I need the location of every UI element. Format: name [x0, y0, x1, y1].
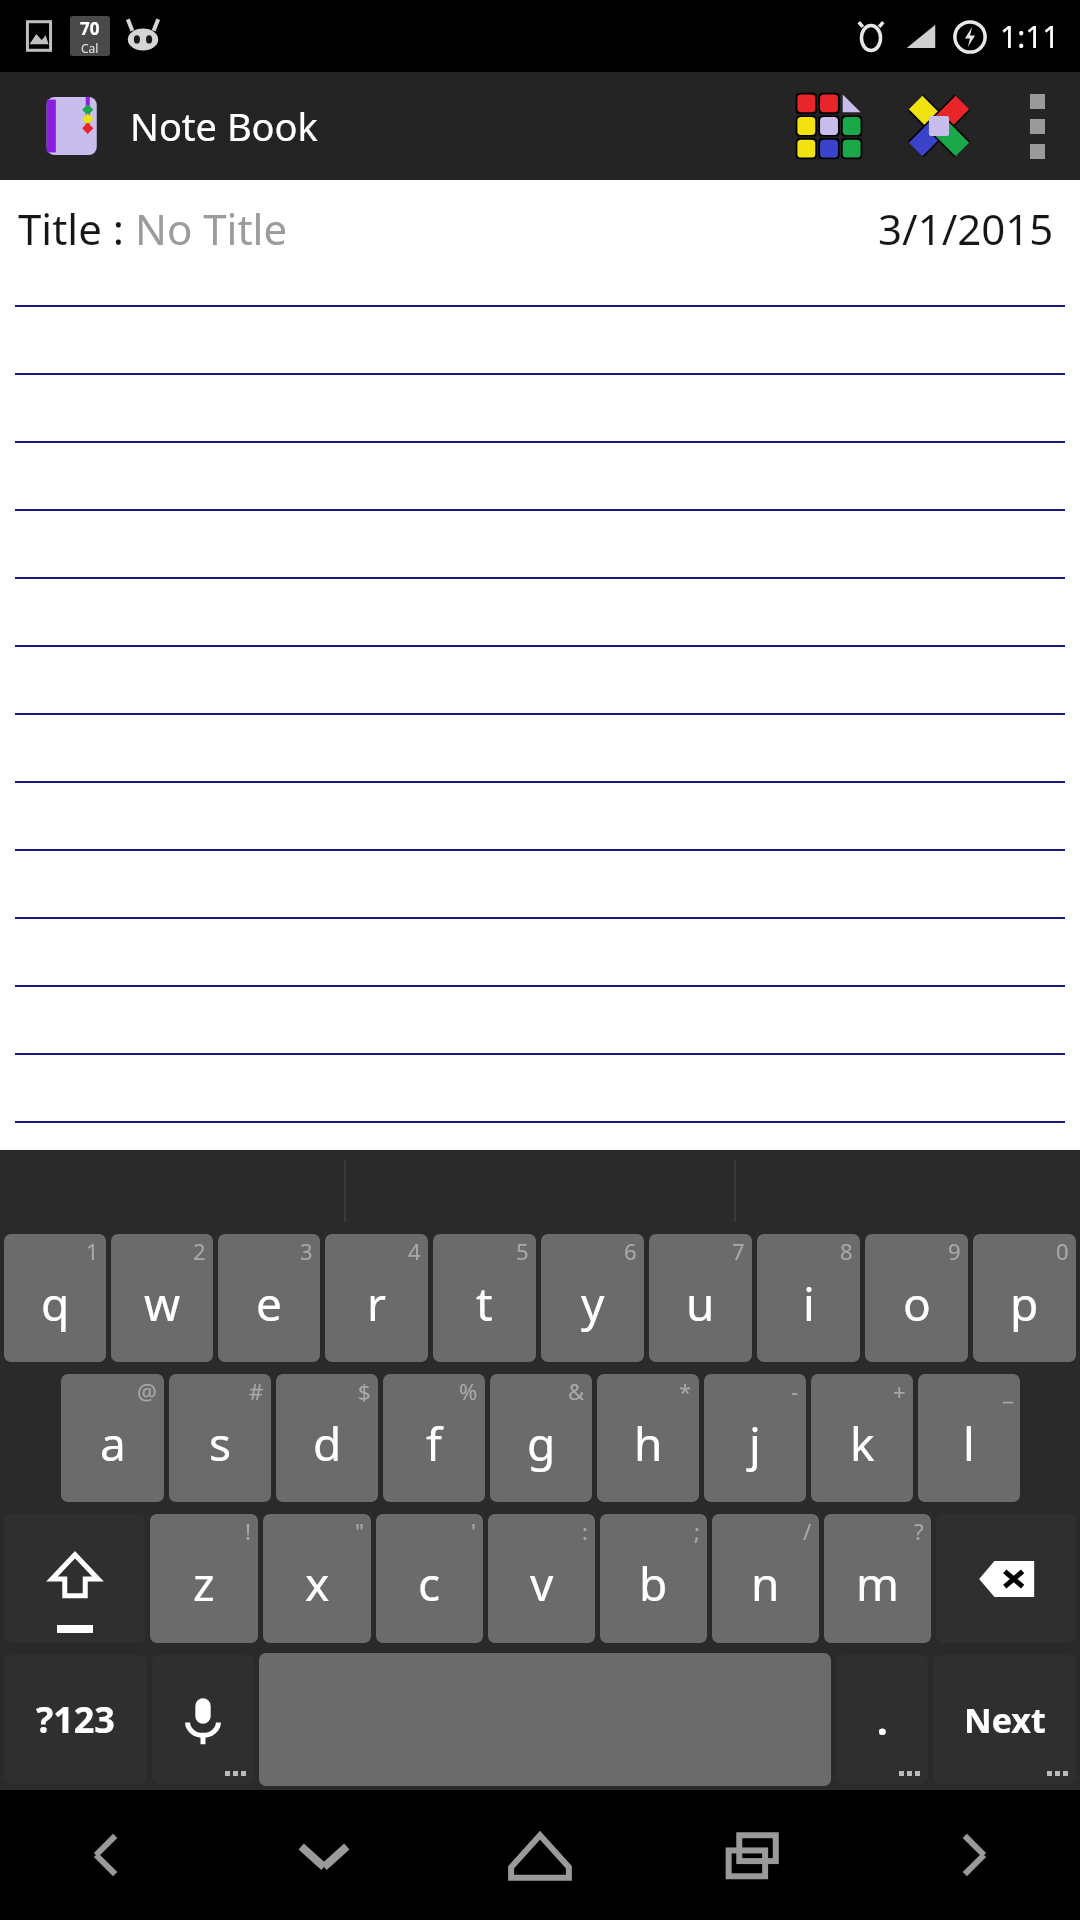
staticText: ?	[914, 1516, 924, 1546]
staticText: 5	[516, 1236, 529, 1266]
staticText: 3	[300, 1236, 313, 1266]
staticText: f	[426, 1412, 442, 1475]
staticText: y	[581, 1272, 605, 1335]
button[interactable]: /	[712, 1514, 819, 1643]
button[interactable]: 6	[541, 1234, 644, 1362]
staticText: 1:11	[1000, 16, 1060, 57]
staticText: z	[193, 1552, 215, 1615]
staticText: x	[305, 1552, 330, 1615]
staticText: +	[893, 1376, 906, 1406]
staticText: d	[313, 1412, 342, 1475]
staticText: 0	[1056, 1236, 1069, 1266]
staticText: a	[100, 1412, 126, 1475]
staticText: 8	[840, 1236, 853, 1266]
button[interactable]: Next	[933, 1655, 1076, 1784]
button[interactable]: 8	[757, 1234, 860, 1362]
staticText: /	[803, 1516, 812, 1546]
button[interactable]: %	[383, 1374, 485, 1502]
staticText: 9	[948, 1236, 961, 1266]
button[interactable]: &	[490, 1374, 592, 1502]
staticText: _	[1003, 1376, 1013, 1406]
staticText: q	[41, 1272, 70, 1335]
staticText: *	[679, 1376, 692, 1406]
staticText: 1	[86, 1236, 99, 1266]
button[interactable]: More options	[994, 72, 1080, 180]
staticText: Cal	[81, 40, 99, 56]
staticText: r	[367, 1272, 386, 1335]
staticText: Next	[964, 1697, 1046, 1743]
staticText: :	[582, 1516, 588, 1546]
button[interactable]: Home	[432, 1790, 648, 1920]
button[interactable]: 4	[325, 1234, 428, 1362]
button[interactable]: .	[836, 1655, 928, 1784]
button[interactable]: _	[918, 1374, 1020, 1502]
button[interactable]: Back	[0, 1790, 216, 1920]
staticText: 7	[732, 1236, 745, 1266]
button[interactable]: Delete	[936, 1514, 1076, 1643]
staticText: "	[355, 1516, 364, 1546]
button[interactable]: '	[376, 1514, 483, 1643]
button[interactable]: 9	[865, 1234, 968, 1362]
button[interactable]: Grid view	[774, 72, 884, 180]
button[interactable]: Forward	[864, 1790, 1080, 1920]
staticText: Note Book	[130, 100, 318, 152]
staticText: t	[476, 1272, 493, 1335]
staticText: %	[459, 1376, 478, 1406]
button[interactable]: $	[276, 1374, 378, 1502]
staticText: b	[639, 1552, 668, 1615]
staticText: ;	[694, 1516, 700, 1546]
button[interactable]: Cross view	[884, 72, 994, 180]
staticText: m	[856, 1552, 900, 1615]
staticText: !	[245, 1516, 251, 1546]
staticText: ?123	[36, 1695, 115, 1744]
button[interactable]: Recents	[648, 1790, 864, 1920]
button[interactable]: !	[150, 1514, 258, 1643]
staticText: u	[686, 1272, 715, 1335]
staticText: 2	[193, 1236, 206, 1266]
staticText: e	[256, 1272, 282, 1335]
button[interactable]: 0	[973, 1234, 1076, 1362]
staticText: v	[530, 1552, 554, 1615]
staticText: $	[358, 1376, 371, 1406]
button[interactable]: #	[169, 1374, 271, 1502]
staticText: 3/1/2015	[878, 200, 1054, 257]
button[interactable]: ?	[824, 1514, 931, 1643]
staticText: h	[634, 1412, 663, 1475]
staticText: '	[471, 1516, 476, 1546]
staticText: &	[568, 1376, 585, 1406]
button[interactable]: 7	[649, 1234, 752, 1362]
staticText: i	[803, 1272, 815, 1335]
staticText: o	[903, 1272, 931, 1335]
staticText: -	[791, 1376, 799, 1406]
staticText: j	[749, 1412, 761, 1475]
button[interactable]: 5	[433, 1234, 536, 1362]
staticText: No Title	[135, 200, 288, 257]
staticText: c	[418, 1552, 441, 1615]
button[interactable]: -	[704, 1374, 806, 1502]
button[interactable]: Voice input	[152, 1655, 254, 1784]
button[interactable]: :	[488, 1514, 595, 1643]
button[interactable]: ?123	[4, 1655, 147, 1784]
staticText: Title :	[18, 200, 135, 257]
button[interactable]: ;	[600, 1514, 707, 1643]
staticText: 70	[80, 17, 100, 40]
staticText: 6	[624, 1236, 637, 1266]
button[interactable]: Hide keyboard	[216, 1790, 432, 1920]
staticText: p	[1010, 1272, 1039, 1335]
button[interactable]: "	[263, 1514, 371, 1643]
staticText: .	[877, 1694, 888, 1746]
button[interactable]: +	[811, 1374, 913, 1502]
button[interactable]: @	[61, 1374, 164, 1502]
staticText: #	[249, 1376, 264, 1406]
button[interactable]: 1	[4, 1234, 106, 1362]
staticText: @	[137, 1376, 157, 1406]
button[interactable]: *	[597, 1374, 699, 1502]
button[interactable]: Shift	[4, 1514, 145, 1643]
staticText: g	[527, 1412, 556, 1475]
staticText: l	[963, 1412, 975, 1475]
staticText: w	[144, 1272, 181, 1335]
button[interactable]: 2	[111, 1234, 213, 1362]
staticText: k	[850, 1412, 875, 1475]
button[interactable]: 3	[218, 1234, 320, 1362]
